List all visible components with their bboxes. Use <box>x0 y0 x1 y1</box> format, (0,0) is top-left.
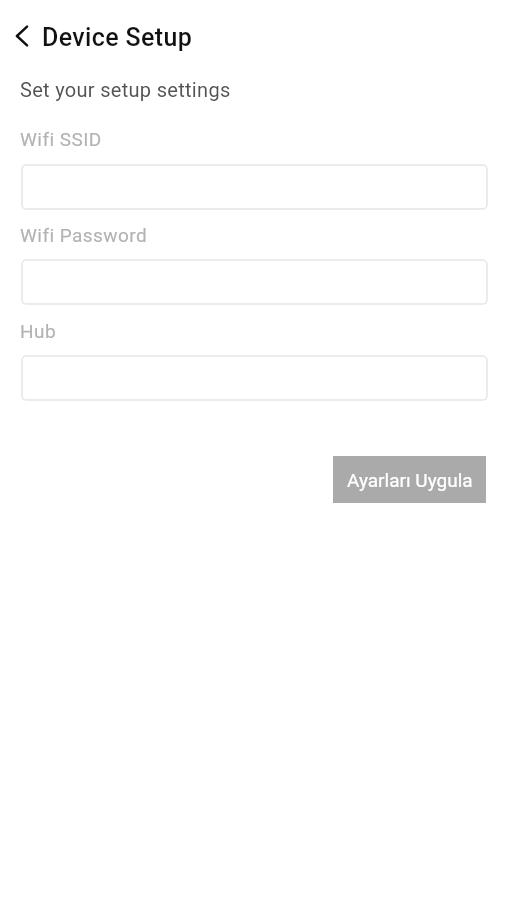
button[interactable]: Wifi SSID <box>21 164 488 210</box>
button[interactable]: Hub <box>21 355 488 401</box>
button[interactable]: Wifi Password <box>21 259 488 305</box>
staticText: Hub <box>20 320 57 342</box>
staticText: Ayarları Uygula <box>347 469 473 491</box>
button[interactable]: Back <box>0 14 44 58</box>
staticText: Device Setup <box>42 23 193 52</box>
button[interactable]: Ayarları Uygula <box>333 456 486 503</box>
staticText: Set your setup settings <box>20 78 231 101</box>
staticText: Wifi Password <box>20 224 148 246</box>
staticText: Wifi SSID <box>20 128 102 150</box>
